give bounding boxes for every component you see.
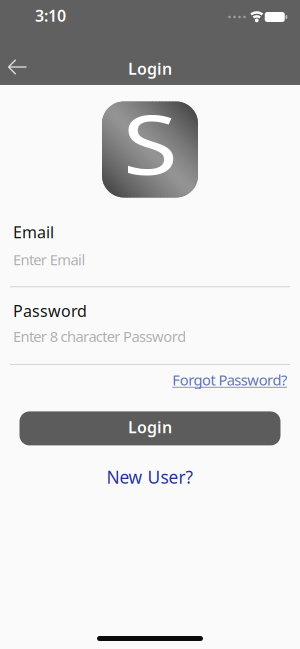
button[interactable]: Login: [19, 411, 280, 445]
staticText: Enter Email: [13, 250, 85, 269]
staticText: Email: [13, 221, 54, 243]
button[interactable]: Back: [0, 47, 26, 87]
button[interactable]: Password field: [13, 326, 287, 346]
button[interactable]: Forgot Password?: [172, 370, 287, 389]
button[interactable]: Email field: [13, 250, 287, 269]
staticText: 3:10: [35, 5, 66, 26]
staticText: Login: [128, 416, 172, 437]
staticText: Forgot Password?: [172, 370, 287, 389]
button[interactable]: New User?: [106, 465, 193, 488]
staticText: Password: [13, 300, 87, 321]
staticText: S: [127, 88, 172, 197]
staticText: Login: [128, 58, 172, 79]
staticText: Enter 8 character Password: [13, 326, 186, 346]
staticText: New User?: [106, 465, 193, 488]
